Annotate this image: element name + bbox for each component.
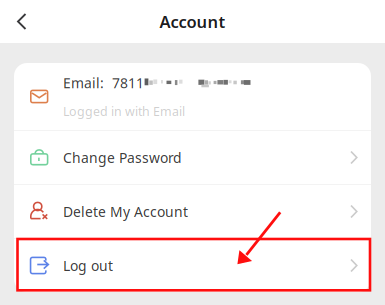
staticText: Log out — [63, 256, 113, 275]
staticText: Change Password — [63, 148, 182, 167]
button[interactable]: Log out — [14, 239, 371, 292]
staticText: Account — [159, 10, 225, 32]
staticText: Delete My Account — [63, 202, 188, 221]
button[interactable]: Back — [0, 1, 40, 42]
button[interactable]: Delete My Account — [14, 185, 371, 238]
button[interactable]: Email: — [14, 63, 371, 130]
staticText: Email: — [63, 74, 104, 92]
staticText: Logged in with Email — [63, 103, 185, 119]
staticText: 7811 — [112, 74, 144, 92]
button[interactable]: Change Password — [14, 131, 371, 184]
